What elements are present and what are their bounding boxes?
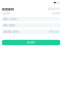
staticText: 获取验证码 [49,30,59,33]
button[interactable]: 请输入新密码 [2,23,60,28]
staticText: 请输入新密码 [3,24,15,27]
staticText: 修改密码 [2,7,14,11]
staticText: 当前密码 [2,12,10,15]
button[interactable]: 请再次输入新密码 [2,30,60,34]
staticText: 使用短信验证 [48,8,60,10]
staticText: 请再次输入新密码 [3,30,19,33]
button[interactable]: 确认修改 [2,40,60,45]
button[interactable]: 忘记密码 [52,12,60,15]
button[interactable]: 使用短信验证 [48,8,60,10]
staticText: 请输入当前密码 [3,17,17,20]
staticText: 忘记密码 [52,12,60,15]
button[interactable]: 请输入当前密码 [2,17,60,21]
staticText: 确认修改 [27,41,35,44]
